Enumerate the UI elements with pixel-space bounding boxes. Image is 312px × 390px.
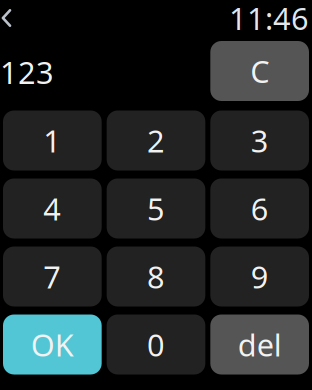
staticText: del xyxy=(238,324,282,365)
staticText: 1 xyxy=(43,120,61,161)
staticText: C xyxy=(250,51,269,91)
staticText: OK xyxy=(31,324,74,365)
button[interactable]: 1 xyxy=(3,110,102,170)
button[interactable]: del xyxy=(210,314,309,374)
staticText: 5 xyxy=(147,188,165,229)
staticText: 3 xyxy=(251,120,269,161)
button[interactable]: 3 xyxy=(210,110,309,170)
staticText: 11:46 xyxy=(229,0,309,38)
staticText: 6 xyxy=(251,188,269,229)
staticText: 123 xyxy=(0,52,54,92)
button[interactable]: 2 xyxy=(107,110,205,170)
button[interactable]: 4 xyxy=(3,178,102,238)
staticText: 8 xyxy=(147,256,165,297)
button[interactable]: 9 xyxy=(210,246,309,306)
staticText: 2 xyxy=(147,120,165,161)
staticText: 9 xyxy=(251,256,269,297)
staticText: 0 xyxy=(147,324,165,365)
button[interactable]: 0 xyxy=(107,314,205,374)
button[interactable]: C xyxy=(210,41,309,101)
button[interactable]: 8 xyxy=(107,246,205,306)
button[interactable]: Back xyxy=(1,1,31,35)
button[interactable]: 5 xyxy=(107,178,205,238)
button[interactable]: OK xyxy=(3,314,102,374)
staticText: 4 xyxy=(43,188,61,229)
button[interactable]: 7 xyxy=(3,246,102,306)
button[interactable]: 6 xyxy=(210,178,309,238)
staticText: 7 xyxy=(43,256,61,297)
